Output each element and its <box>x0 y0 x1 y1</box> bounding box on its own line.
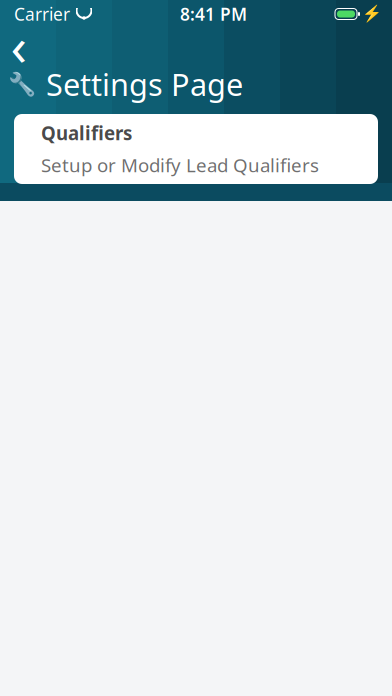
staticText: ⚡ <box>362 5 382 23</box>
staticText: ‹ <box>10 10 27 80</box>
staticText: 🔧 <box>8 71 36 97</box>
button[interactable]: Back <box>2 30 36 60</box>
staticText: Setup or Modify Lead Qualifiers <box>41 152 319 177</box>
staticText: Carrier <box>14 2 70 25</box>
staticText: 8:41 PM <box>180 2 247 25</box>
button[interactable]: Qualifiers <box>14 114 378 184</box>
staticText: Settings Page <box>46 64 243 104</box>
staticText: Qualifiers <box>41 121 132 145</box>
